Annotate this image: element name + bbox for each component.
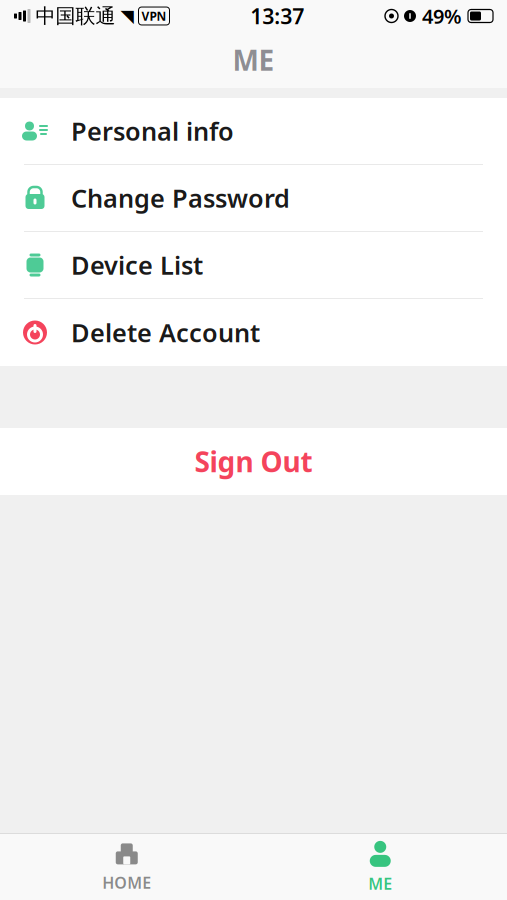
staticText: HOME [102, 872, 151, 893]
button[interactable]: Delete Account [0, 299, 507, 366]
staticText: Change Password [71, 181, 290, 215]
button[interactable]: Device List [0, 232, 507, 299]
staticText: Personal info [71, 114, 234, 148]
staticText: VPN [141, 8, 166, 24]
button[interactable]: Personal info [0, 98, 507, 165]
staticText: Device List [71, 248, 203, 282]
button[interactable]: HOME [0, 834, 253, 900]
staticText: Sign Out [194, 443, 312, 480]
staticText: Delete Account [71, 316, 260, 349]
button[interactable]: ME [253, 834, 507, 900]
staticText: 49% [422, 3, 462, 29]
staticText: ◥ [120, 6, 133, 26]
staticText: ME [368, 873, 392, 894]
staticText: 中国联通 [35, 4, 115, 28]
staticText: ME [232, 41, 274, 79]
button[interactable]: Change Password [0, 165, 507, 232]
button[interactable]: Sign Out [0, 428, 507, 495]
staticText: 13:37 [250, 2, 304, 30]
